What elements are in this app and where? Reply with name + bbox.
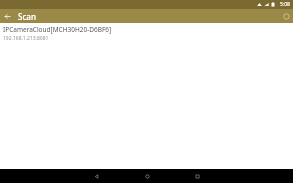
button[interactable]: Recent apps [191, 170, 203, 182]
button[interactable]: Refresh scan [279, 9, 293, 23]
staticText: 192.168.1.213:8081 [3, 35, 49, 42]
staticText: 5:08 [280, 1, 290, 8]
button[interactable]: Back [0, 9, 14, 23]
button[interactable]: Back [90, 170, 102, 182]
staticText: IPCameraCloud[MCH30H20-D6BF6] [3, 25, 112, 34]
button[interactable]: IPCameraCloud[MCH30H20-D6BF6] [0, 23, 293, 44]
button[interactable]: Home [141, 170, 153, 182]
staticText: Scan [18, 11, 36, 22]
